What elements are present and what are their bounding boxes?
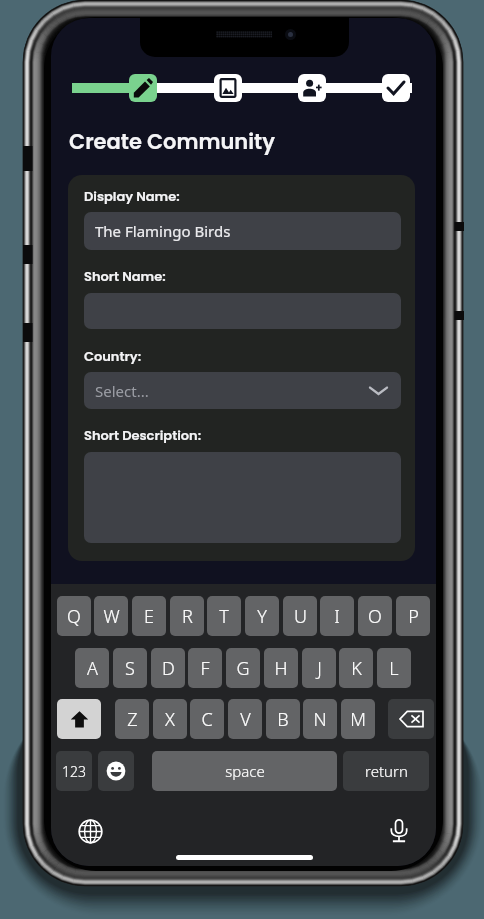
button[interactable]: V bbox=[228, 699, 262, 739]
staticText: Select... bbox=[95, 381, 149, 401]
staticText: Country: bbox=[84, 347, 142, 365]
staticText: return bbox=[365, 761, 408, 781]
button[interactable]: Step bbox=[382, 74, 410, 102]
button[interactable]: H bbox=[264, 648, 298, 688]
button[interactable]: O bbox=[358, 596, 392, 636]
staticText: E bbox=[144, 604, 154, 629]
staticText: F bbox=[200, 656, 210, 681]
staticText: P bbox=[408, 604, 419, 629]
staticText: I bbox=[334, 604, 340, 629]
button[interactable]: Switch language bbox=[74, 815, 106, 847]
staticText: A bbox=[87, 656, 98, 681]
staticText: B bbox=[277, 707, 289, 732]
staticText: space bbox=[225, 761, 265, 781]
button[interactable]: A bbox=[75, 648, 109, 688]
staticText: H bbox=[274, 656, 288, 681]
staticText: W bbox=[103, 604, 120, 629]
button[interactable]: I bbox=[320, 596, 354, 636]
button[interactable]: Create Community bbox=[69, 127, 275, 156]
button[interactable]: Emoji bbox=[98, 751, 134, 791]
staticText: D bbox=[162, 656, 175, 681]
button[interactable]: E bbox=[132, 596, 166, 636]
button[interactable]: space bbox=[152, 751, 337, 791]
button[interactable]: The Flamingo Birds bbox=[84, 212, 401, 250]
button[interactable]: Select... bbox=[84, 372, 401, 409]
button[interactable]: U bbox=[283, 596, 317, 636]
button[interactable]: 123 bbox=[56, 751, 92, 791]
staticText: R bbox=[182, 604, 193, 629]
staticText: 123 bbox=[62, 762, 86, 781]
staticText: K bbox=[351, 656, 362, 681]
button[interactable]: Y bbox=[245, 596, 279, 636]
button[interactable]: S bbox=[113, 648, 147, 688]
staticText: G bbox=[236, 656, 250, 681]
staticText: C bbox=[201, 707, 213, 732]
button[interactable]: Z bbox=[115, 699, 149, 739]
staticText: J bbox=[317, 656, 322, 681]
button[interactable]: Q bbox=[57, 596, 91, 636]
button[interactable]: return bbox=[343, 751, 429, 791]
staticText: X bbox=[165, 707, 175, 732]
button[interactable]: G bbox=[226, 648, 260, 688]
button[interactable]: B bbox=[266, 699, 300, 739]
staticText: Display Name: bbox=[84, 187, 180, 205]
staticText: Y bbox=[257, 604, 267, 629]
button[interactable]: Backspace bbox=[388, 699, 434, 739]
staticText: M bbox=[350, 707, 366, 732]
button[interactable]: F bbox=[188, 648, 222, 688]
button[interactable]: Step bbox=[129, 74, 157, 102]
button[interactable]: K bbox=[339, 648, 373, 688]
staticText: Q bbox=[67, 604, 81, 629]
button[interactable]: R bbox=[170, 596, 204, 636]
button[interactable]: L bbox=[377, 648, 411, 688]
staticText: O bbox=[368, 604, 382, 629]
staticText: L bbox=[389, 656, 399, 681]
button[interactable]: D bbox=[151, 648, 185, 688]
staticText: The Flamingo Birds bbox=[95, 221, 231, 241]
button[interactable]: N bbox=[303, 699, 337, 739]
staticText: Z bbox=[127, 707, 138, 732]
button[interactable]: X bbox=[153, 699, 187, 739]
button[interactable]: Voice input bbox=[383, 815, 415, 847]
staticText: Short Description: bbox=[84, 426, 202, 444]
button[interactable]: J bbox=[302, 648, 336, 688]
staticText: U bbox=[294, 604, 307, 629]
button[interactable]: P bbox=[396, 596, 430, 636]
staticText: T bbox=[219, 604, 229, 629]
staticText: V bbox=[240, 707, 251, 732]
button[interactable]: W bbox=[94, 596, 128, 636]
staticText: S bbox=[125, 656, 135, 681]
staticText: Short Name: bbox=[84, 267, 166, 285]
button[interactable]: Shift bbox=[57, 699, 101, 739]
staticText: N bbox=[313, 707, 327, 732]
button[interactable]: Step bbox=[214, 74, 242, 102]
button[interactable]: C bbox=[190, 699, 224, 739]
button[interactable]: M bbox=[341, 699, 375, 739]
button[interactable]: T bbox=[207, 596, 241, 636]
button[interactable]: Step bbox=[298, 74, 326, 102]
